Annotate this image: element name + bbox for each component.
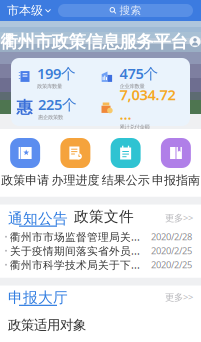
button[interactable]: 更多>>	[165, 291, 193, 306]
button[interactable]: 结果公示	[100, 138, 151, 188]
staticText: 475个	[119, 63, 158, 83]
button[interactable]: 申报大厅	[8, 291, 68, 306]
staticText: 搜索	[119, 4, 141, 17]
staticText: 惠企政策数	[38, 114, 63, 121]
staticText: 7,034.72...	[119, 85, 175, 124]
staticText: 更多>>	[165, 291, 193, 303]
button[interactable]: 办理进度	[50, 138, 100, 188]
staticText: 累计兑付金额	[119, 124, 149, 130]
staticText: 225个	[38, 94, 77, 114]
staticText: 政策适用对象	[8, 317, 86, 333]
staticText: 企业库数量	[119, 83, 144, 90]
staticText: 惠	[16, 98, 32, 117]
staticText: 衢州市市场监督管理局关于...	[10, 230, 143, 244]
button[interactable]: 政策文件	[68, 210, 134, 227]
button[interactable]: 衢州市市场监督管理局关于...	[0, 230, 201, 244]
staticText: 申报大厅	[8, 289, 68, 307]
staticText: 办理进度	[51, 173, 99, 188]
staticText: 2020/2/25	[151, 244, 192, 257]
button[interactable]: 通知公告	[8, 211, 68, 227]
button[interactable]: 政策申请	[0, 138, 50, 188]
button[interactable]: 衢州市科学技术局关于下达2...	[0, 258, 201, 272]
button[interactable]: 关于疫情期间落实省外员工...	[0, 244, 201, 258]
staticText: 通知公告	[8, 209, 68, 227]
staticText: 市本级	[7, 3, 43, 18]
staticText: 更多>>	[165, 211, 193, 224]
staticText: 199个	[37, 63, 76, 83]
staticText: 关于疫情期间落实省外员工...	[10, 244, 143, 258]
staticText: 政策文件	[74, 208, 134, 226]
staticText: 申报指南	[152, 173, 200, 188]
staticText: 衢州市政策信息服务平台	[0, 31, 187, 52]
staticText: 2020/2/25	[151, 258, 192, 271]
button[interactable]: 搜索	[58, 4, 201, 17]
button[interactable]: 更多>>	[165, 212, 193, 227]
staticText: 2020/2/28	[151, 230, 192, 243]
button[interactable]: 申报指南	[151, 138, 201, 188]
button[interactable]: 市本级	[0, 0, 58, 21]
staticText: 衢州市科学技术局关于下达2...	[10, 258, 143, 272]
staticText: 政策库数量	[37, 83, 62, 90]
staticText: 结果公示	[102, 173, 150, 188]
staticText: 政策申请	[1, 173, 49, 188]
